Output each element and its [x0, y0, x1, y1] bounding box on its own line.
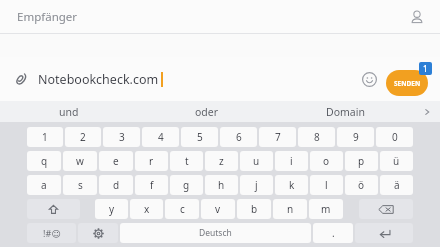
button[interactable]: i: [275, 151, 308, 171]
staticText: 8: [314, 130, 320, 144]
button[interactable]: Anhang hinzufügen: [8, 66, 34, 92]
button[interactable]: SENDEN: [386, 70, 428, 96]
staticText: p: [358, 154, 365, 168]
button[interactable]: m: [309, 199, 343, 219]
staticText: ä: [394, 178, 400, 192]
button[interactable]: oder: [138, 101, 276, 122]
button[interactable]: Deutsch: [120, 223, 311, 243]
staticText: d: [113, 178, 120, 192]
button[interactable]: 2: [65, 127, 101, 147]
button[interactable]: a: [27, 175, 61, 195]
button[interactable]: q: [27, 151, 61, 171]
button[interactable]: d: [99, 175, 133, 195]
staticText: c: [180, 202, 185, 216]
staticText: q: [41, 154, 48, 168]
button[interactable]: j: [240, 175, 273, 195]
button[interactable]: r: [135, 151, 168, 171]
button[interactable]: ü: [380, 151, 413, 171]
staticText: j: [255, 178, 258, 192]
staticText: 2: [80, 130, 86, 144]
staticText: t: [185, 154, 189, 168]
button[interactable]: s: [63, 175, 97, 195]
staticText: SENDEN: [394, 79, 421, 88]
button[interactable]: w: [63, 151, 97, 171]
button[interactable]: Einstellungen: [78, 223, 118, 243]
staticText: 1: [423, 63, 428, 74]
button[interactable]: e: [99, 151, 133, 171]
button[interactable]: 6: [220, 127, 257, 147]
button[interactable]: Mehr Vorschläge: [414, 101, 440, 122]
staticText: l: [325, 178, 328, 192]
button[interactable]: c: [165, 199, 199, 219]
staticText: .: [332, 226, 335, 240]
button[interactable]: 9: [337, 127, 374, 147]
staticText: v: [215, 202, 221, 216]
staticText: 9: [353, 130, 359, 144]
button[interactable]: Domain: [276, 101, 414, 122]
staticText: w: [76, 154, 84, 168]
staticText: f: [150, 178, 154, 192]
staticText: und: [59, 105, 79, 119]
button[interactable]: 1: [27, 127, 63, 147]
button[interactable]: 8: [298, 127, 335, 147]
staticText: !#☺: [43, 227, 61, 239]
button[interactable]: l: [310, 175, 343, 195]
button[interactable]: f: [135, 175, 168, 195]
staticText: 4: [158, 130, 164, 144]
button[interactable]: x: [130, 199, 163, 219]
staticText: e: [113, 154, 119, 168]
staticText: Deutsch: [199, 227, 232, 239]
button[interactable]: z: [205, 151, 238, 171]
button[interactable]: Umschalttaste: [27, 199, 80, 219]
staticText: y: [109, 202, 115, 216]
staticText: x: [144, 202, 150, 216]
button[interactable]: b: [237, 199, 271, 219]
button[interactable]: v: [201, 199, 235, 219]
staticText: Empfänger: [17, 9, 78, 25]
staticText: k: [289, 178, 295, 192]
staticText: ü: [393, 154, 400, 168]
staticText: Domain: [326, 105, 365, 119]
button[interactable]: 4: [142, 127, 179, 147]
button[interactable]: ä: [380, 175, 413, 195]
button[interactable]: Löschen: [359, 199, 413, 219]
staticText: r: [149, 154, 154, 168]
button[interactable]: k: [275, 175, 308, 195]
button[interactable]: Eingabetaste: [355, 223, 413, 243]
staticText: b: [251, 202, 258, 216]
staticText: Notebookcheck.com: [38, 71, 159, 88]
staticText: m: [321, 202, 331, 216]
button[interactable]: .: [313, 223, 353, 243]
button[interactable]: 0: [376, 127, 413, 147]
staticText: n: [287, 202, 294, 216]
button[interactable]: !#☺: [27, 223, 76, 243]
staticText: g: [183, 178, 190, 192]
staticText: 7: [275, 130, 281, 144]
button[interactable]: t: [170, 151, 203, 171]
button[interactable]: n: [273, 199, 307, 219]
button[interactable]: Kontakte auswählen: [404, 4, 430, 30]
staticText: 0: [392, 130, 398, 144]
button[interactable]: g: [170, 175, 203, 195]
button[interactable]: h: [205, 175, 238, 195]
staticText: 1: [42, 130, 48, 144]
button[interactable]: u: [240, 151, 273, 171]
staticText: 3: [119, 130, 125, 144]
staticText: ö: [358, 178, 365, 192]
button[interactable]: Emoji: [356, 66, 382, 92]
staticText: 6: [236, 130, 242, 144]
button[interactable]: und: [0, 101, 138, 122]
button[interactable]: o: [310, 151, 343, 171]
button[interactable]: 3: [103, 127, 140, 147]
button[interactable]: 5: [181, 127, 218, 147]
staticText: oder: [195, 105, 219, 119]
staticText: 5: [197, 130, 203, 144]
button[interactable]: ö: [345, 175, 378, 195]
staticText: z: [219, 154, 224, 168]
button[interactable]: 7: [259, 127, 296, 147]
staticText: u: [253, 154, 260, 168]
button[interactable]: y: [95, 199, 128, 219]
staticText: i: [290, 154, 293, 168]
staticText: s: [78, 178, 83, 192]
button[interactable]: p: [345, 151, 378, 171]
